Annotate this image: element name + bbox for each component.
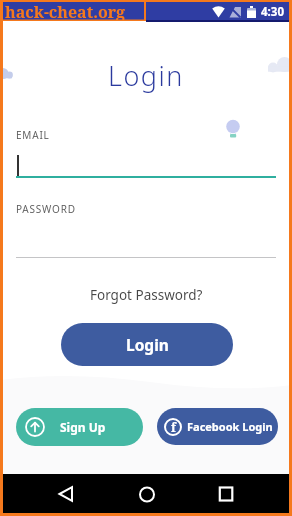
staticText: Login (126, 334, 169, 355)
staticText: hack-cheat.org (5, 1, 126, 20)
staticText: Facebook Login (187, 419, 273, 434)
staticText: EMAIL (16, 128, 50, 142)
button[interactable]: f (157, 408, 278, 445)
button[interactable] (204, 474, 248, 513)
staticText: f (171, 419, 176, 435)
staticText: Sign Up (60, 419, 106, 435)
staticText: 4:30 (261, 4, 284, 20)
button[interactable] (124, 474, 169, 513)
staticText: PASSWORD (16, 202, 76, 216)
staticText: Login (108, 57, 184, 94)
button[interactable]: Login (61, 323, 233, 366)
button[interactable]: Forgot Password? (90, 286, 203, 304)
button[interactable] (44, 474, 88, 513)
button[interactable]: Sign Up (16, 408, 143, 446)
